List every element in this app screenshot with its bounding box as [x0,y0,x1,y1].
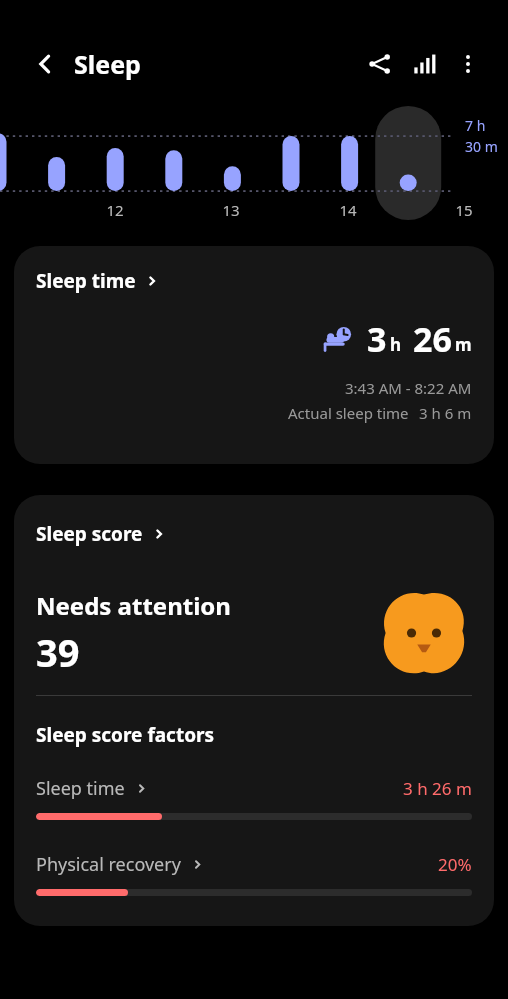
staticText: 7 h [465,116,486,135]
staticText: Actual sleep time [288,403,409,423]
staticText: 3 h 6 m [419,403,472,423]
staticText: 14 [339,200,357,220]
staticText: 39 [36,626,80,678]
button[interactable]: Statistics [402,42,446,86]
button[interactable]: Share [358,42,402,86]
button[interactable]: Back [26,44,66,84]
staticText: Sleep time [36,268,136,294]
staticText: 15 [455,200,473,220]
button[interactable]: Physical recovery [36,852,472,896]
staticText: 12 [106,200,124,220]
staticText: 3 h 26 m [403,777,472,800]
staticText: m [455,333,472,356]
staticText: 13 [222,200,240,220]
staticText: 3 [367,316,387,362]
staticText: Sleep score [36,521,143,547]
staticText: 30 m [465,137,498,156]
staticText: Needs attention [36,589,231,622]
staticText: h [390,333,402,356]
button[interactable]: Sleep time [36,776,472,820]
staticText: Physical recovery [36,852,181,877]
button[interactable]: More options [446,42,490,86]
button[interactable]: Sleep time [14,246,494,464]
staticText: 26 [413,316,452,362]
staticText: 3:43 AM - 8:22 AM [345,378,472,398]
staticText: Sleep [74,47,141,81]
staticText: Sleep time [36,776,125,801]
staticText: 20% [438,853,472,876]
staticText: Sleep score factors [36,722,215,748]
button[interactable]: Sleep score [36,521,167,547]
